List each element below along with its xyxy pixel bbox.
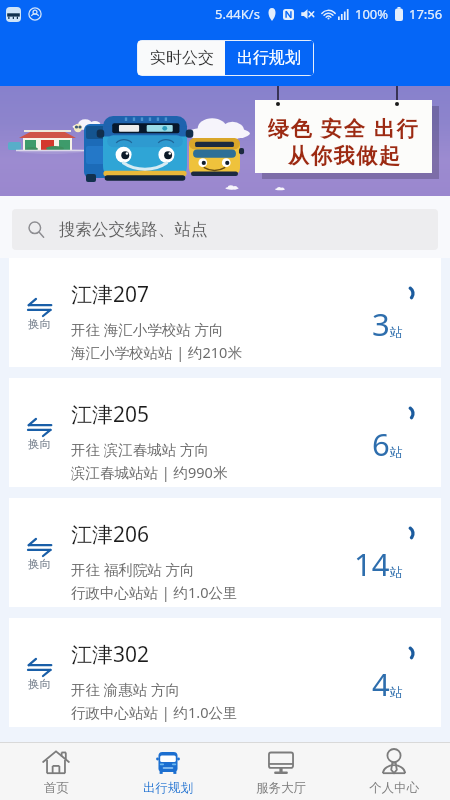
staticText: 开往 渝惠站 方向 <box>71 679 181 699</box>
staticText: 首页 <box>44 780 69 796</box>
staticText: 5.44K/s <box>215 5 260 23</box>
button[interactable]: 个人中心 <box>337 743 450 800</box>
button[interactable]: 服务大厅 <box>224 743 337 800</box>
staticText: 江津302 <box>71 640 150 669</box>
staticText: 出行规划 <box>143 780 193 796</box>
staticText: 开往 滨江春城站 方向 <box>71 439 210 459</box>
staticText: 行政中心站站 | 约1.0公里 <box>71 702 238 722</box>
button[interactable]: 搜索公交线路、站点 <box>12 209 438 250</box>
staticText: 江津206 <box>71 520 150 549</box>
button[interactable]: 实时公交 <box>138 41 225 75</box>
staticText: 4 <box>372 663 390 705</box>
staticText: 实时公交 <box>150 48 214 68</box>
staticText: 海汇小学校站站 | 约210米 <box>71 342 242 362</box>
staticText: 3 <box>372 303 390 345</box>
button[interactable]: 换向 <box>16 418 63 451</box>
staticText: 站 <box>390 324 403 340</box>
staticText: 江津205 <box>71 400 150 429</box>
button[interactable]: 绿色安全出行广告 <box>0 86 450 196</box>
staticText: 换向 <box>28 437 51 451</box>
button[interactable]: 出行规划 <box>225 41 313 75</box>
staticText: 出行规划 <box>237 48 301 68</box>
button[interactable]: 换向 <box>16 298 63 331</box>
button[interactable]: 出行规划 <box>112 743 224 800</box>
staticText: 6 <box>372 423 390 465</box>
staticText: 换向 <box>28 317 51 331</box>
button[interactable]: 换向 <box>16 538 63 571</box>
staticText: 绿色 安全 出行 <box>268 114 420 143</box>
staticText: 14 <box>354 543 390 585</box>
staticText: 服务大厅 <box>256 780 306 796</box>
staticText: 个人中心 <box>369 780 419 796</box>
staticText: 站 <box>390 444 403 460</box>
button[interactable]: 换向 <box>9 378 441 487</box>
staticText: 滨江春城站站 | 约990米 <box>71 462 228 482</box>
staticText: 100% <box>355 5 389 23</box>
staticText: 江津207 <box>71 280 150 309</box>
staticText: 17:56 <box>409 5 443 23</box>
staticText: 换向 <box>28 557 51 571</box>
button[interactable]: 换向 <box>9 498 441 607</box>
button[interactable]: 换向 <box>16 658 63 691</box>
staticText: 开往 福利院站 方向 <box>71 559 195 579</box>
staticText: 从你我做起 <box>287 143 401 169</box>
staticText: 站 <box>390 684 403 700</box>
button[interactable]: 换向 <box>9 618 441 727</box>
staticText: 换向 <box>28 677 51 691</box>
button[interactable]: 首页 <box>0 743 112 800</box>
staticText: 开往 海汇小学校站 方向 <box>71 319 224 339</box>
staticText: 搜索公交线路、站点 <box>59 219 208 240</box>
button[interactable]: 换向 <box>9 258 441 367</box>
staticText: 行政中心站站 | 约1.0公里 <box>71 582 238 602</box>
staticText: 站 <box>390 564 403 580</box>
